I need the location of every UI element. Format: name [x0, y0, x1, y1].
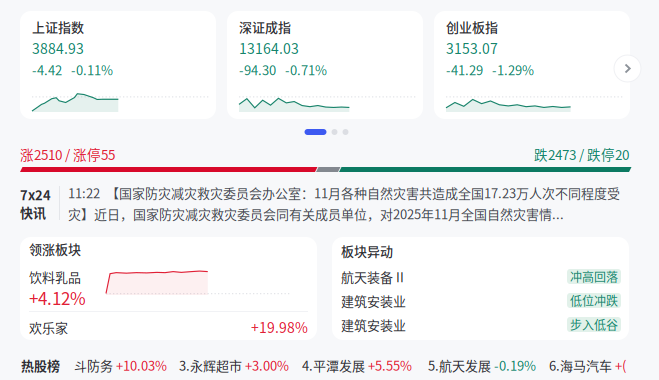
- staticText: 饮料乳品: [29, 267, 81, 286]
- staticText: 板块异动: [341, 241, 393, 260]
- staticText: 13164.03: [239, 38, 299, 58]
- staticText: 低位冲跌: [570, 292, 618, 309]
- staticText: -94.30: [239, 60, 276, 79]
- staticText: +(: [615, 356, 626, 374]
- staticText: +4.12%: [29, 285, 86, 310]
- button[interactable]: 上证指数: [20, 11, 216, 119]
- staticText: 快讯: [20, 203, 46, 221]
- staticText: 斗防务: [74, 356, 113, 374]
- staticText: 跌2473 / 跌停20: [534, 144, 629, 164]
- staticText: 上证指数: [32, 17, 84, 36]
- staticText: +5.55%: [368, 356, 412, 374]
- staticText: +19.98%: [251, 317, 308, 337]
- staticText: 11:22 【国家防灾减灾救灾委员会办公室：11月各种自然灾害共造成全国17.2…: [68, 183, 620, 202]
- button[interactable]: 创业板指: [434, 11, 630, 119]
- staticText: 涨2510 / 涨停55: [20, 144, 115, 164]
- staticText: -0.11%: [71, 60, 113, 79]
- staticText: 创业板指: [446, 17, 498, 36]
- staticText: +3.00%: [245, 356, 289, 374]
- staticText: 3.永辉超市: [179, 356, 242, 374]
- staticText: 灾】近日，国家防灾减灾救灾委员会同有关成员单位，对2025年11月全国自然灾害情…: [68, 204, 564, 223]
- staticText: 4.平潭发展: [302, 356, 365, 374]
- staticText: -41.29: [446, 60, 483, 79]
- staticText: 领涨板块: [29, 239, 81, 258]
- staticText: 3884.93: [32, 38, 84, 58]
- staticText: 深证成指: [239, 17, 291, 36]
- staticText: -1.29%: [492, 60, 534, 79]
- staticText: -4.42: [32, 60, 62, 79]
- button[interactable]: 深证成指: [227, 11, 423, 119]
- staticText: 6.海马汽车: [549, 356, 612, 374]
- staticText: 步入低谷: [570, 316, 618, 333]
- button[interactable]: 热股榜: [0, 352, 659, 378]
- staticText: -0.19%: [494, 356, 536, 374]
- staticText: 7x24: [20, 185, 51, 204]
- staticText: 航天装备 II: [341, 267, 404, 286]
- staticText: 3153.07: [446, 38, 498, 58]
- staticText: 热股榜: [21, 356, 60, 374]
- button[interactable]: 板块异动: [332, 237, 629, 340]
- staticText: 建筑安装业: [341, 315, 406, 334]
- staticText: 5.航天发展: [428, 356, 491, 374]
- staticText: 欢乐家: [29, 318, 68, 336]
- staticText: 冲高回落: [570, 268, 618, 285]
- button[interactable]: 7x24: [0, 183, 659, 223]
- staticText: -0.71%: [285, 60, 327, 79]
- button[interactable]: 领涨板块: [20, 237, 317, 340]
- staticText: +10.03%: [116, 356, 167, 374]
- staticText: 建筑安装业: [341, 291, 406, 310]
- button[interactable]: Next indices: [614, 55, 641, 82]
